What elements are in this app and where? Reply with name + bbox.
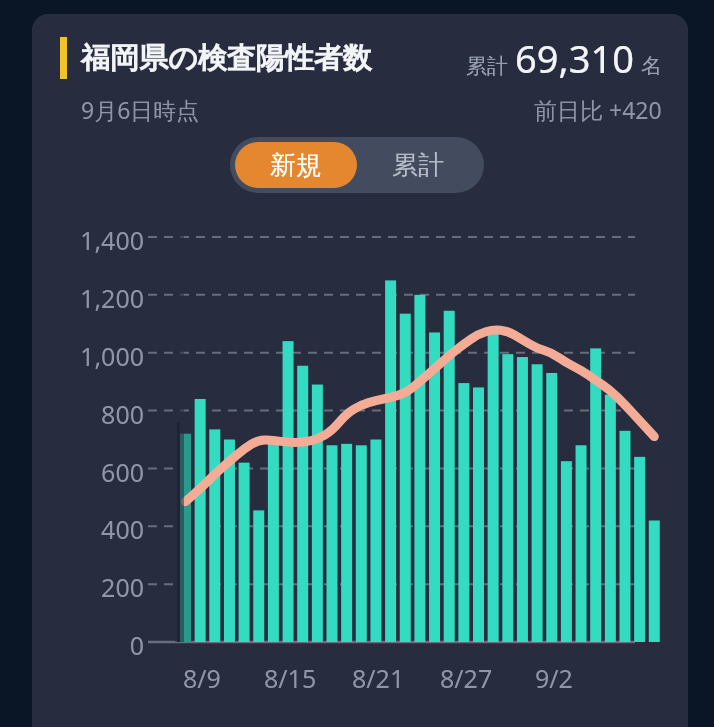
staticText: 福岡県の検査陽性者数 <box>81 40 372 77</box>
staticText: 1,400 <box>80 223 144 257</box>
staticText: 200 <box>101 570 144 604</box>
staticText: 8/9 <box>183 661 221 695</box>
staticText: 名 <box>641 53 662 79</box>
staticText: 累計 <box>466 53 508 79</box>
staticText: 9/2 <box>535 661 573 695</box>
staticText: 9月6日時点 <box>81 94 200 125</box>
staticText: 1,000 <box>80 339 144 373</box>
staticText: 累計 <box>392 149 444 182</box>
staticText: 8/27 <box>440 661 493 695</box>
staticText: 800 <box>101 397 144 431</box>
staticText: 8/21 <box>352 661 405 695</box>
staticText: 前日比 +420 <box>534 94 662 125</box>
button[interactable]: 累計 <box>357 142 479 188</box>
staticText: 1,200 <box>80 281 144 315</box>
staticText: 0 <box>129 628 144 662</box>
staticText: 600 <box>101 455 144 489</box>
staticText: 8/15 <box>264 661 317 695</box>
staticText: 新規 <box>270 149 322 182</box>
staticText: 400 <box>101 512 144 546</box>
button[interactable]: 新規 <box>235 142 357 188</box>
staticText: 69,310 <box>515 32 634 84</box>
